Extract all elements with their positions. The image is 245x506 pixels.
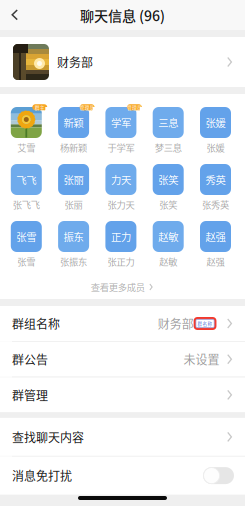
button[interactable]: 秀英	[196, 164, 234, 210]
button[interactable]: 消息免打扰	[203, 467, 234, 484]
button[interactable]: 张媛	[196, 107, 234, 153]
staticText: 张媛	[206, 141, 224, 154]
button[interactable]: 财务部	[0, 37, 245, 87]
staticText: 张媛	[205, 115, 225, 130]
staticText: 张力天	[107, 198, 134, 211]
button[interactable]: 群组名称	[0, 306, 245, 341]
staticText: 赵敏	[159, 255, 177, 268]
button[interactable]: 张笑	[149, 164, 187, 210]
staticText: 查找聊天内容	[12, 428, 84, 446]
staticText: 于学军	[107, 141, 134, 154]
staticText: 新颖	[64, 115, 84, 130]
staticText: 财务部	[158, 315, 194, 332]
staticText: 管理员	[80, 104, 95, 111]
staticText: 群组名称	[12, 315, 60, 332]
staticText: 群名称	[197, 320, 212, 327]
staticText: 张正力	[107, 255, 134, 268]
button[interactable]: 消息免打扰	[0, 457, 245, 495]
staticText: 未设置	[183, 350, 219, 368]
button[interactable]: 赵敏	[149, 221, 187, 267]
staticText: 群主	[35, 104, 45, 111]
button[interactable]: 返回	[0, 0, 31, 30]
staticText: 飞飞	[16, 172, 36, 187]
button[interactable]: 飞飞	[7, 164, 45, 210]
staticText: 艾雪	[17, 141, 35, 154]
staticText: 群管理	[12, 386, 48, 404]
staticText: 查看更多成员	[91, 280, 145, 294]
staticText: 张丽	[64, 172, 84, 187]
staticText: 梦三息	[155, 141, 182, 154]
button[interactable]: 正力	[102, 221, 140, 267]
staticText: 赵强	[206, 255, 224, 268]
staticText: 消息免打扰	[12, 467, 72, 484]
staticText: 张雪	[16, 229, 36, 244]
staticText: 财务部	[57, 53, 93, 71]
staticText: 学军	[111, 115, 131, 130]
staticText: 群公告	[12, 350, 48, 368]
button[interactable]: 新颖	[55, 107, 93, 153]
button[interactable]: 查找聊天内容	[0, 418, 245, 456]
staticText: 张雪	[17, 255, 35, 268]
staticText: 张振东	[60, 255, 87, 268]
button[interactable]: 张丽	[55, 164, 93, 210]
staticText: 秀英	[205, 172, 225, 187]
button[interactable]: 三息	[149, 107, 187, 153]
staticText: 正力	[111, 229, 131, 244]
staticText: 杨新颖	[60, 141, 87, 154]
staticText: 张笑	[159, 198, 177, 211]
button[interactable]: 张雪	[7, 221, 45, 267]
button[interactable]: 振东	[55, 221, 93, 267]
button[interactable]: 群管理	[0, 377, 245, 412]
staticText: 张秀英	[202, 198, 229, 211]
staticText: 张飞飞	[13, 198, 40, 211]
button[interactable]: 赵强	[196, 221, 234, 267]
staticText: 赵敏	[158, 229, 178, 244]
staticText: 张笑	[158, 172, 178, 187]
button[interactable]: 力天	[102, 164, 140, 210]
button[interactable]: 群公告	[0, 342, 245, 377]
button[interactable]: 学军	[102, 107, 140, 153]
staticText: 力天	[111, 172, 131, 187]
staticText: 赵强	[205, 229, 225, 244]
button[interactable]: 群主	[7, 107, 45, 153]
staticText: 振东	[64, 229, 84, 244]
staticText: 聊天信息 (96)	[80, 5, 165, 25]
button[interactable]: 查看更多成员	[0, 276, 245, 298]
staticText: 张丽	[65, 198, 83, 211]
staticText: 管理员	[127, 104, 142, 111]
staticText: 三息	[158, 115, 178, 130]
